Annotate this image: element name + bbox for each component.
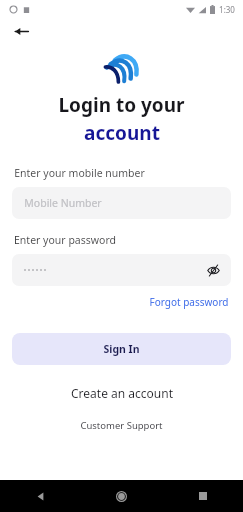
button[interactable]: Sign In bbox=[12, 333, 231, 365]
button[interactable]: Recent apps bbox=[162, 480, 243, 512]
button[interactable]: Customer Support bbox=[74, 417, 169, 434]
staticText: Customer Support bbox=[80, 419, 163, 432]
button[interactable]: Show password bbox=[12, 254, 231, 286]
staticText: Forgot password bbox=[149, 295, 229, 309]
button[interactable]: Mobile Number bbox=[12, 187, 231, 219]
staticText: account bbox=[84, 120, 160, 146]
button[interactable]: Show password bbox=[203, 260, 223, 280]
button[interactable]: Back bbox=[0, 480, 81, 512]
staticText: Mobile Number bbox=[24, 196, 102, 210]
staticText: Create an account bbox=[71, 385, 173, 401]
staticText: Enter your password bbox=[14, 233, 116, 247]
staticText: Sign In bbox=[103, 342, 140, 356]
staticText: Enter your mobile number bbox=[14, 166, 145, 180]
button[interactable]: Home bbox=[81, 480, 162, 512]
button[interactable]: Forgot password bbox=[147, 293, 231, 311]
button[interactable]: Create an account bbox=[65, 383, 179, 403]
button[interactable]: Back bbox=[10, 20, 32, 42]
staticText: 1:30 bbox=[219, 4, 235, 15]
staticText: Login to your bbox=[58, 92, 185, 118]
